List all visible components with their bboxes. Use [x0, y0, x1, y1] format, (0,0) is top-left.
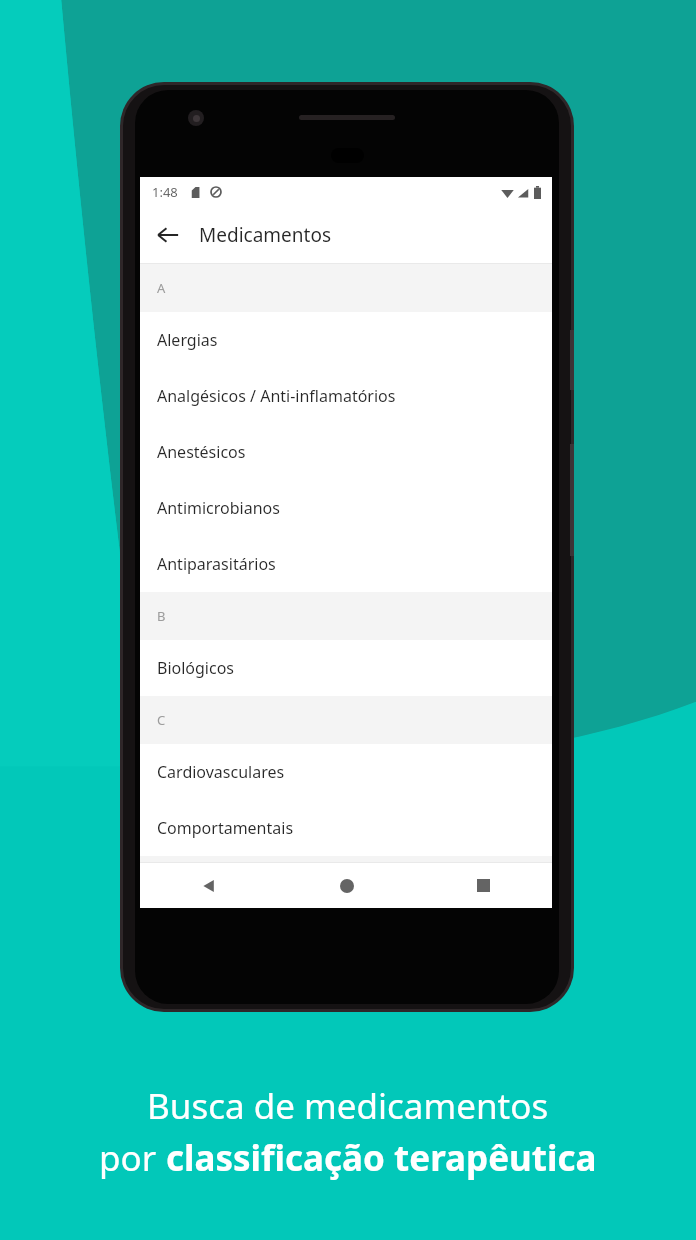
- button[interactable]: Anestésicos: [140, 424, 552, 480]
- button[interactable]: Biológicos: [140, 640, 552, 696]
- staticText: Biológicos: [157, 657, 235, 679]
- button[interactable]: Antiparasitários: [140, 536, 552, 592]
- button[interactable]: Antimicrobianos: [140, 480, 552, 536]
- staticText: Anestésicos: [157, 441, 246, 463]
- staticText: Analgésicos / Anti-inflamatórios: [157, 385, 396, 407]
- staticText: B: [157, 607, 166, 625]
- button[interactable]: Alergias: [140, 312, 552, 368]
- staticText: classificação terapêutica: [166, 1134, 597, 1182]
- button[interactable]: Back: [140, 863, 278, 908]
- staticText: Comportamentais: [157, 817, 294, 839]
- staticText: Antiparasitários: [157, 553, 276, 575]
- staticText: Busca de medicamentos: [147, 1082, 549, 1130]
- staticText: Cardiovasculares: [157, 761, 285, 783]
- button[interactable]: Comportamentais: [140, 800, 552, 856]
- staticText: Alergias: [157, 329, 218, 351]
- button[interactable]: Analgésicos / Anti-inflamatórios: [140, 368, 552, 424]
- button[interactable]: Recent apps: [415, 863, 552, 908]
- button[interactable]: Home: [278, 863, 415, 908]
- staticText: 1:48: [152, 183, 178, 201]
- button[interactable]: Back: [145, 212, 191, 258]
- staticText: C: [157, 711, 166, 729]
- staticText: por: [99, 1134, 166, 1182]
- staticText: Antimicrobianos: [157, 497, 280, 519]
- staticText: Medicamentos: [199, 222, 331, 248]
- button[interactable]: Cardiovasculares: [140, 744, 552, 800]
- staticText: A: [157, 279, 166, 297]
